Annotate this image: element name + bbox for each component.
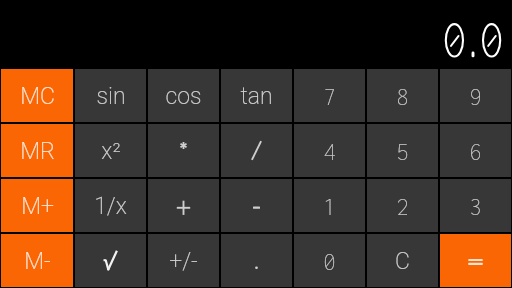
button[interactable]: M+ xyxy=(1,179,73,232)
button[interactable]: 8 xyxy=(367,69,438,122)
staticText: M+ xyxy=(21,193,54,220)
button[interactable]: Divide xyxy=(221,124,292,177)
staticText: cos xyxy=(165,83,202,110)
staticText: sin xyxy=(96,83,126,110)
button[interactable]: 1/x xyxy=(75,179,146,232)
staticText: 9 xyxy=(469,84,482,110)
staticText: 1 xyxy=(323,194,336,220)
staticText: 6 xyxy=(469,139,482,165)
staticText: tan xyxy=(240,83,273,110)
button[interactable]: 3 xyxy=(440,179,511,232)
button[interactable]: MC xyxy=(1,69,73,122)
button[interactable]: 7 xyxy=(294,69,365,122)
staticText: 2 xyxy=(396,194,409,220)
staticText: 0 xyxy=(323,249,336,275)
button[interactable]: 2 xyxy=(367,179,438,232)
other: Result display 0.0 xyxy=(0,0,512,68)
button[interactable]: cos xyxy=(148,69,219,122)
button[interactable]: C xyxy=(367,234,438,287)
staticText: 4 xyxy=(323,139,336,165)
button[interactable]: MR xyxy=(1,124,73,177)
staticText: MR xyxy=(20,138,55,165)
other: Decimal point xyxy=(221,234,292,287)
button[interactable]: 5 xyxy=(367,124,438,177)
button[interactable]: Plus xyxy=(148,179,219,232)
other: Equals xyxy=(440,234,511,287)
button[interactable]: Minus xyxy=(221,179,292,232)
staticText: M- xyxy=(24,248,51,275)
staticText: x² xyxy=(101,138,121,165)
button[interactable]: 9 xyxy=(440,69,511,122)
staticText: 1/x xyxy=(94,193,127,220)
button[interactable]: Decimal point xyxy=(221,234,292,287)
staticText: 5 xyxy=(396,139,409,165)
button[interactable]: tan xyxy=(221,69,292,122)
button[interactable]: sin xyxy=(75,69,146,122)
staticText: +/- xyxy=(169,248,198,275)
button[interactable]: +/- xyxy=(148,234,219,287)
other: Plus xyxy=(148,179,219,232)
button[interactable]: Equals xyxy=(440,234,511,287)
staticText: 7 xyxy=(323,84,336,110)
button[interactable]: Multiply xyxy=(148,124,219,177)
other: Divide xyxy=(221,124,292,177)
button[interactable]: 1 xyxy=(294,179,365,232)
button[interactable]: 6 xyxy=(440,124,511,177)
button[interactable]: Square root xyxy=(75,234,146,287)
button[interactable]: 4 xyxy=(294,124,365,177)
button[interactable]: x² xyxy=(75,124,146,177)
staticText: 3 xyxy=(469,194,482,220)
button[interactable]: 0 xyxy=(294,234,365,287)
staticText: C xyxy=(395,248,410,275)
other: Multiply xyxy=(148,124,219,177)
other: Minus xyxy=(221,179,292,232)
staticText: MC xyxy=(20,83,55,110)
staticText: 8 xyxy=(396,84,409,110)
other: Square root xyxy=(75,234,146,287)
button[interactable]: M- xyxy=(1,234,73,287)
